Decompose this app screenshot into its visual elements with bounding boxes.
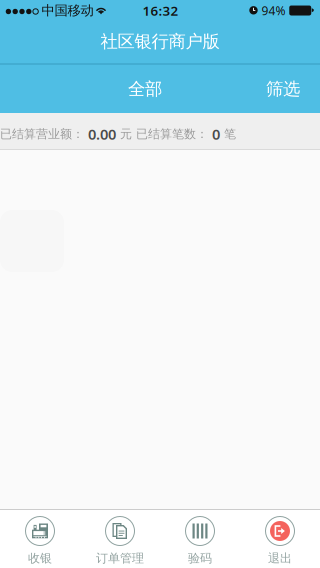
staticText: 社区银行商户版 bbox=[100, 31, 219, 52]
button[interactable]: 订单管理 bbox=[80, 510, 160, 568]
staticText: 全部 bbox=[128, 78, 162, 100]
staticText: 元 bbox=[116, 127, 132, 141]
button[interactable]: 全部 bbox=[100, 64, 190, 113]
staticText: 已结算营业额： bbox=[0, 127, 84, 141]
staticText: 退出 bbox=[268, 551, 292, 566]
staticText: 验码 bbox=[188, 551, 212, 566]
staticText: 筛选 bbox=[266, 78, 300, 100]
staticText: 16:32 bbox=[142, 2, 178, 19]
button[interactable]: 收银 bbox=[0, 510, 80, 568]
button[interactable]: 退出 bbox=[240, 510, 320, 568]
staticText: 收银 bbox=[28, 551, 52, 566]
staticText: 94% bbox=[261, 2, 285, 18]
staticText: 已结算笔数： bbox=[132, 127, 208, 141]
button[interactable]: 验码 bbox=[160, 510, 240, 568]
staticText: 0.00 bbox=[84, 124, 116, 144]
staticText: 中国移动 bbox=[41, 2, 93, 19]
staticText: 订单管理 bbox=[96, 551, 144, 566]
button[interactable]: 筛选 bbox=[256, 64, 310, 113]
staticText: 0 bbox=[208, 124, 220, 144]
staticText: 笔 bbox=[220, 127, 236, 141]
